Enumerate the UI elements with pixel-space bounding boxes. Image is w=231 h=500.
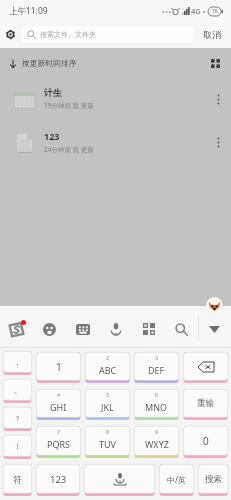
staticText: 7 [57, 428, 61, 435]
staticText: 19分钟前 我 更新 [44, 101, 94, 110]
staticText: 9 [155, 428, 159, 435]
staticText: ， [14, 358, 21, 367]
staticText: 中/英 [167, 474, 186, 485]
staticText: 5 [106, 391, 110, 398]
button[interactable] [183, 352, 228, 383]
staticText: 计生 [44, 87, 62, 98]
button[interactable]: 3 [134, 352, 179, 383]
staticText: 76 [212, 8, 218, 15]
staticText: 符 [13, 474, 22, 485]
button[interactable]: ， [3, 351, 32, 375]
button[interactable]: Settings [0, 21, 21, 48]
button[interactable]: ？ [3, 407, 32, 431]
button[interactable]: 按更新时间排序 [0, 48, 231, 78]
button[interactable]: Hide keyboard [198, 310, 231, 348]
button[interactable]: 7 [36, 426, 81, 458]
staticText: 搜索文件、文件夹 [40, 30, 96, 39]
staticText: 0 [203, 434, 209, 448]
button[interactable]: 0 [183, 426, 228, 458]
staticText: DEF [148, 364, 165, 376]
button[interactable]: 搜索 [198, 464, 228, 496]
button[interactable]: 9 [134, 426, 179, 458]
staticText: JKL [101, 401, 114, 413]
staticText: MNO [145, 401, 168, 413]
button[interactable]: Avatar [206, 297, 223, 314]
staticText: TUV [99, 438, 116, 450]
button[interactable]: 2 [85, 352, 130, 383]
staticText: 24分钟前 我 更新 [44, 145, 94, 154]
button[interactable]: 123 [36, 464, 80, 496]
button[interactable]: 5 [85, 389, 130, 420]
button[interactable]: 123 [0, 121, 231, 164]
staticText: 4G [191, 6, 201, 16]
staticText: 搜索 [205, 474, 222, 485]
staticText: 重输 [197, 398, 214, 409]
staticText: 4 [57, 391, 61, 398]
button[interactable]: 。 [3, 379, 32, 403]
staticText: 3 [155, 354, 159, 361]
button[interactable]: Keyboard [66, 310, 99, 348]
staticText: ！ [14, 442, 21, 451]
staticText: 。 [14, 386, 21, 395]
staticText: 123 [44, 130, 60, 142]
button[interactable]: 4 [36, 389, 81, 420]
button[interactable]: 取消 [193, 21, 231, 48]
staticText: 2 [106, 354, 110, 361]
button[interactable]: Grid view [202, 48, 228, 78]
staticText: 取消 [203, 29, 221, 40]
staticText: ？ [14, 414, 21, 423]
button[interactable]: 符 [3, 464, 32, 496]
staticText: 8 [106, 428, 110, 435]
button[interactable]: More options [207, 121, 229, 164]
button[interactable] [84, 464, 155, 496]
staticText: 6 [155, 391, 159, 398]
staticText: GHI [50, 401, 67, 413]
button[interactable]: Sogou input [0, 310, 33, 348]
button[interactable]: 搜索文件、文件夹 [21, 26, 193, 43]
button[interactable]: 1 [36, 352, 81, 383]
button[interactable]: 重输 [183, 389, 228, 420]
staticText: 上午11:09 [9, 5, 48, 17]
button[interactable]: More options [207, 78, 229, 121]
button[interactable]: Search [165, 310, 198, 348]
button[interactable]: 6 [134, 389, 179, 420]
button[interactable]: ！ [3, 435, 32, 459]
staticText: WXYZ [145, 438, 169, 450]
button[interactable]: Voice input [99, 310, 132, 348]
button[interactable]: 计生 [0, 78, 231, 121]
staticText: PQRS [47, 438, 71, 450]
staticText: 1 [56, 360, 62, 374]
button[interactable]: Emoji [33, 310, 66, 348]
button[interactable]: Scan [132, 310, 165, 348]
button[interactable]: 中/英 [159, 464, 194, 496]
staticText: ABC [99, 364, 117, 376]
staticText: 123 [50, 473, 67, 486]
staticText: 按更新时间排序 [22, 58, 77, 68]
button[interactable]: 8 [85, 426, 130, 458]
